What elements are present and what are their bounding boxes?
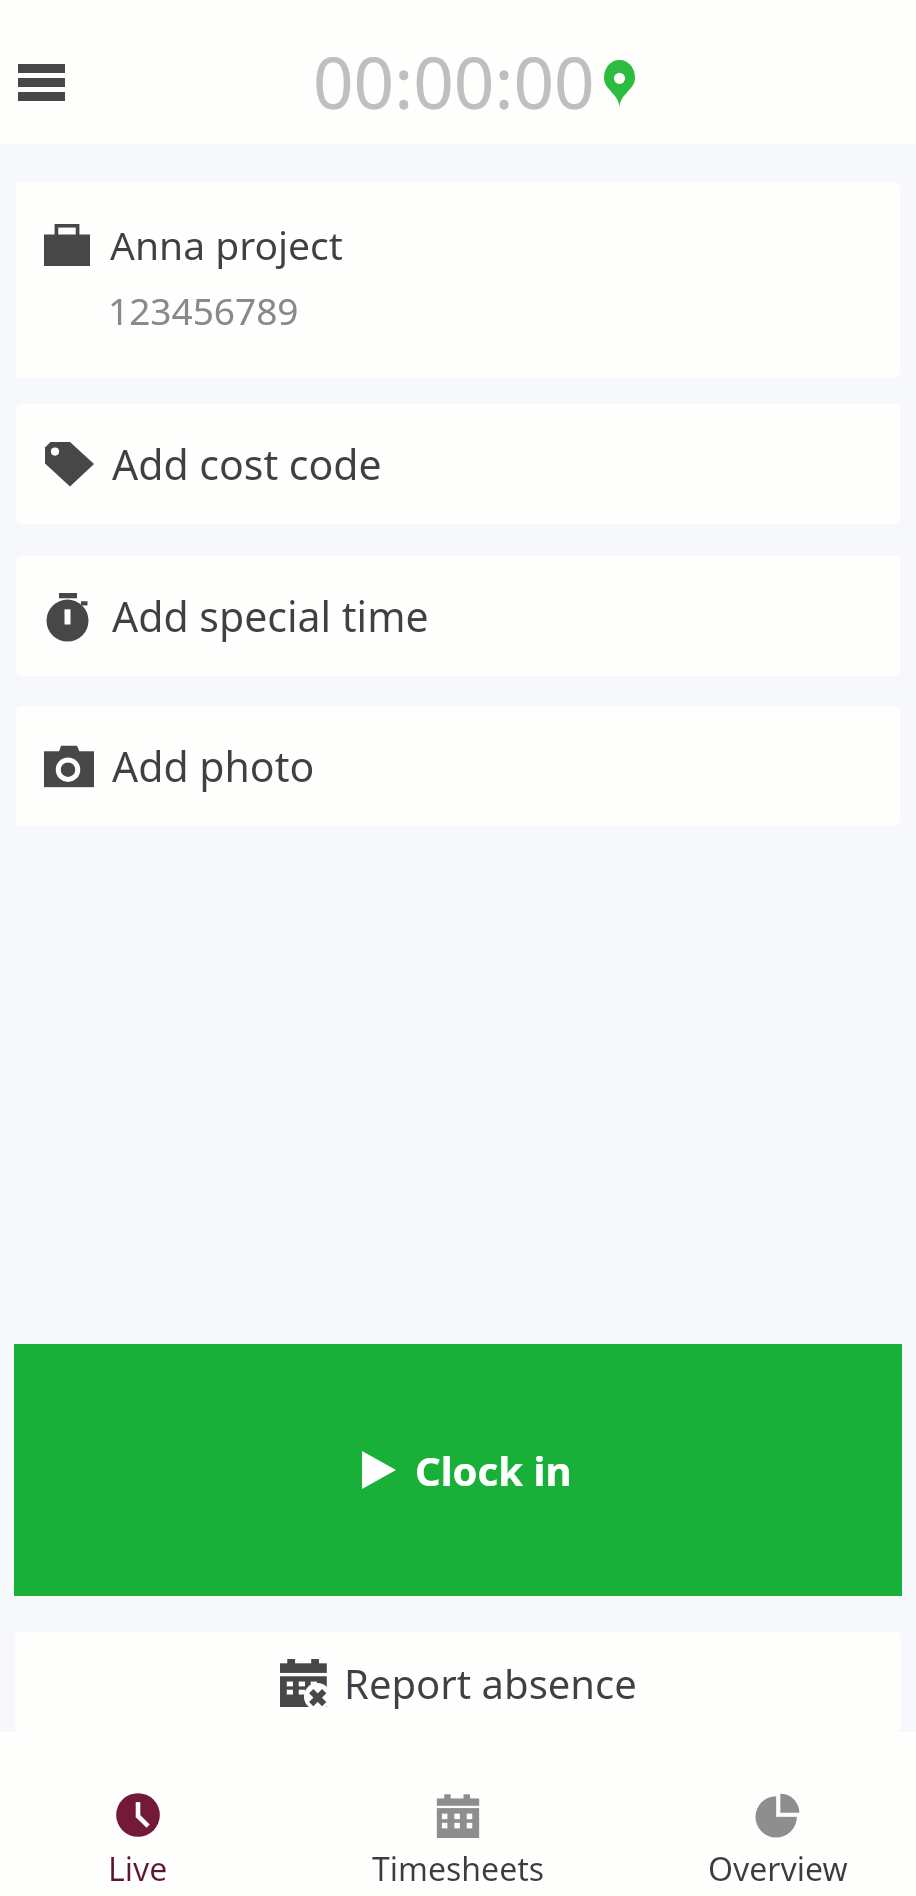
button[interactable]: Add special time [16,556,900,676]
staticText: Add special time [112,588,429,644]
staticText: Live [108,1847,168,1891]
button[interactable]: Live [28,1732,248,1896]
button[interactable]: Timesheets [348,1732,568,1896]
button[interactable]: Clock in [14,1344,902,1596]
staticText: Anna project [110,218,343,271]
staticText: Overview [708,1847,848,1891]
staticText: Report absence [344,1656,637,1710]
staticText: 123456789 [108,285,299,335]
button[interactable]: Open navigation menu [0,44,82,120]
button[interactable]: Add cost code [16,404,900,524]
button[interactable]: Overview [668,1732,888,1896]
button[interactable]: Report absence [15,1632,901,1732]
button[interactable]: Anna project [16,182,900,378]
staticText: Add cost code [112,436,382,492]
staticText: 00:00:00 [313,33,595,130]
button[interactable]: Add photo [16,706,900,826]
staticText: Timesheets [372,1847,545,1891]
staticText: Clock in [415,1443,572,1497]
staticText: Add photo [112,738,315,794]
